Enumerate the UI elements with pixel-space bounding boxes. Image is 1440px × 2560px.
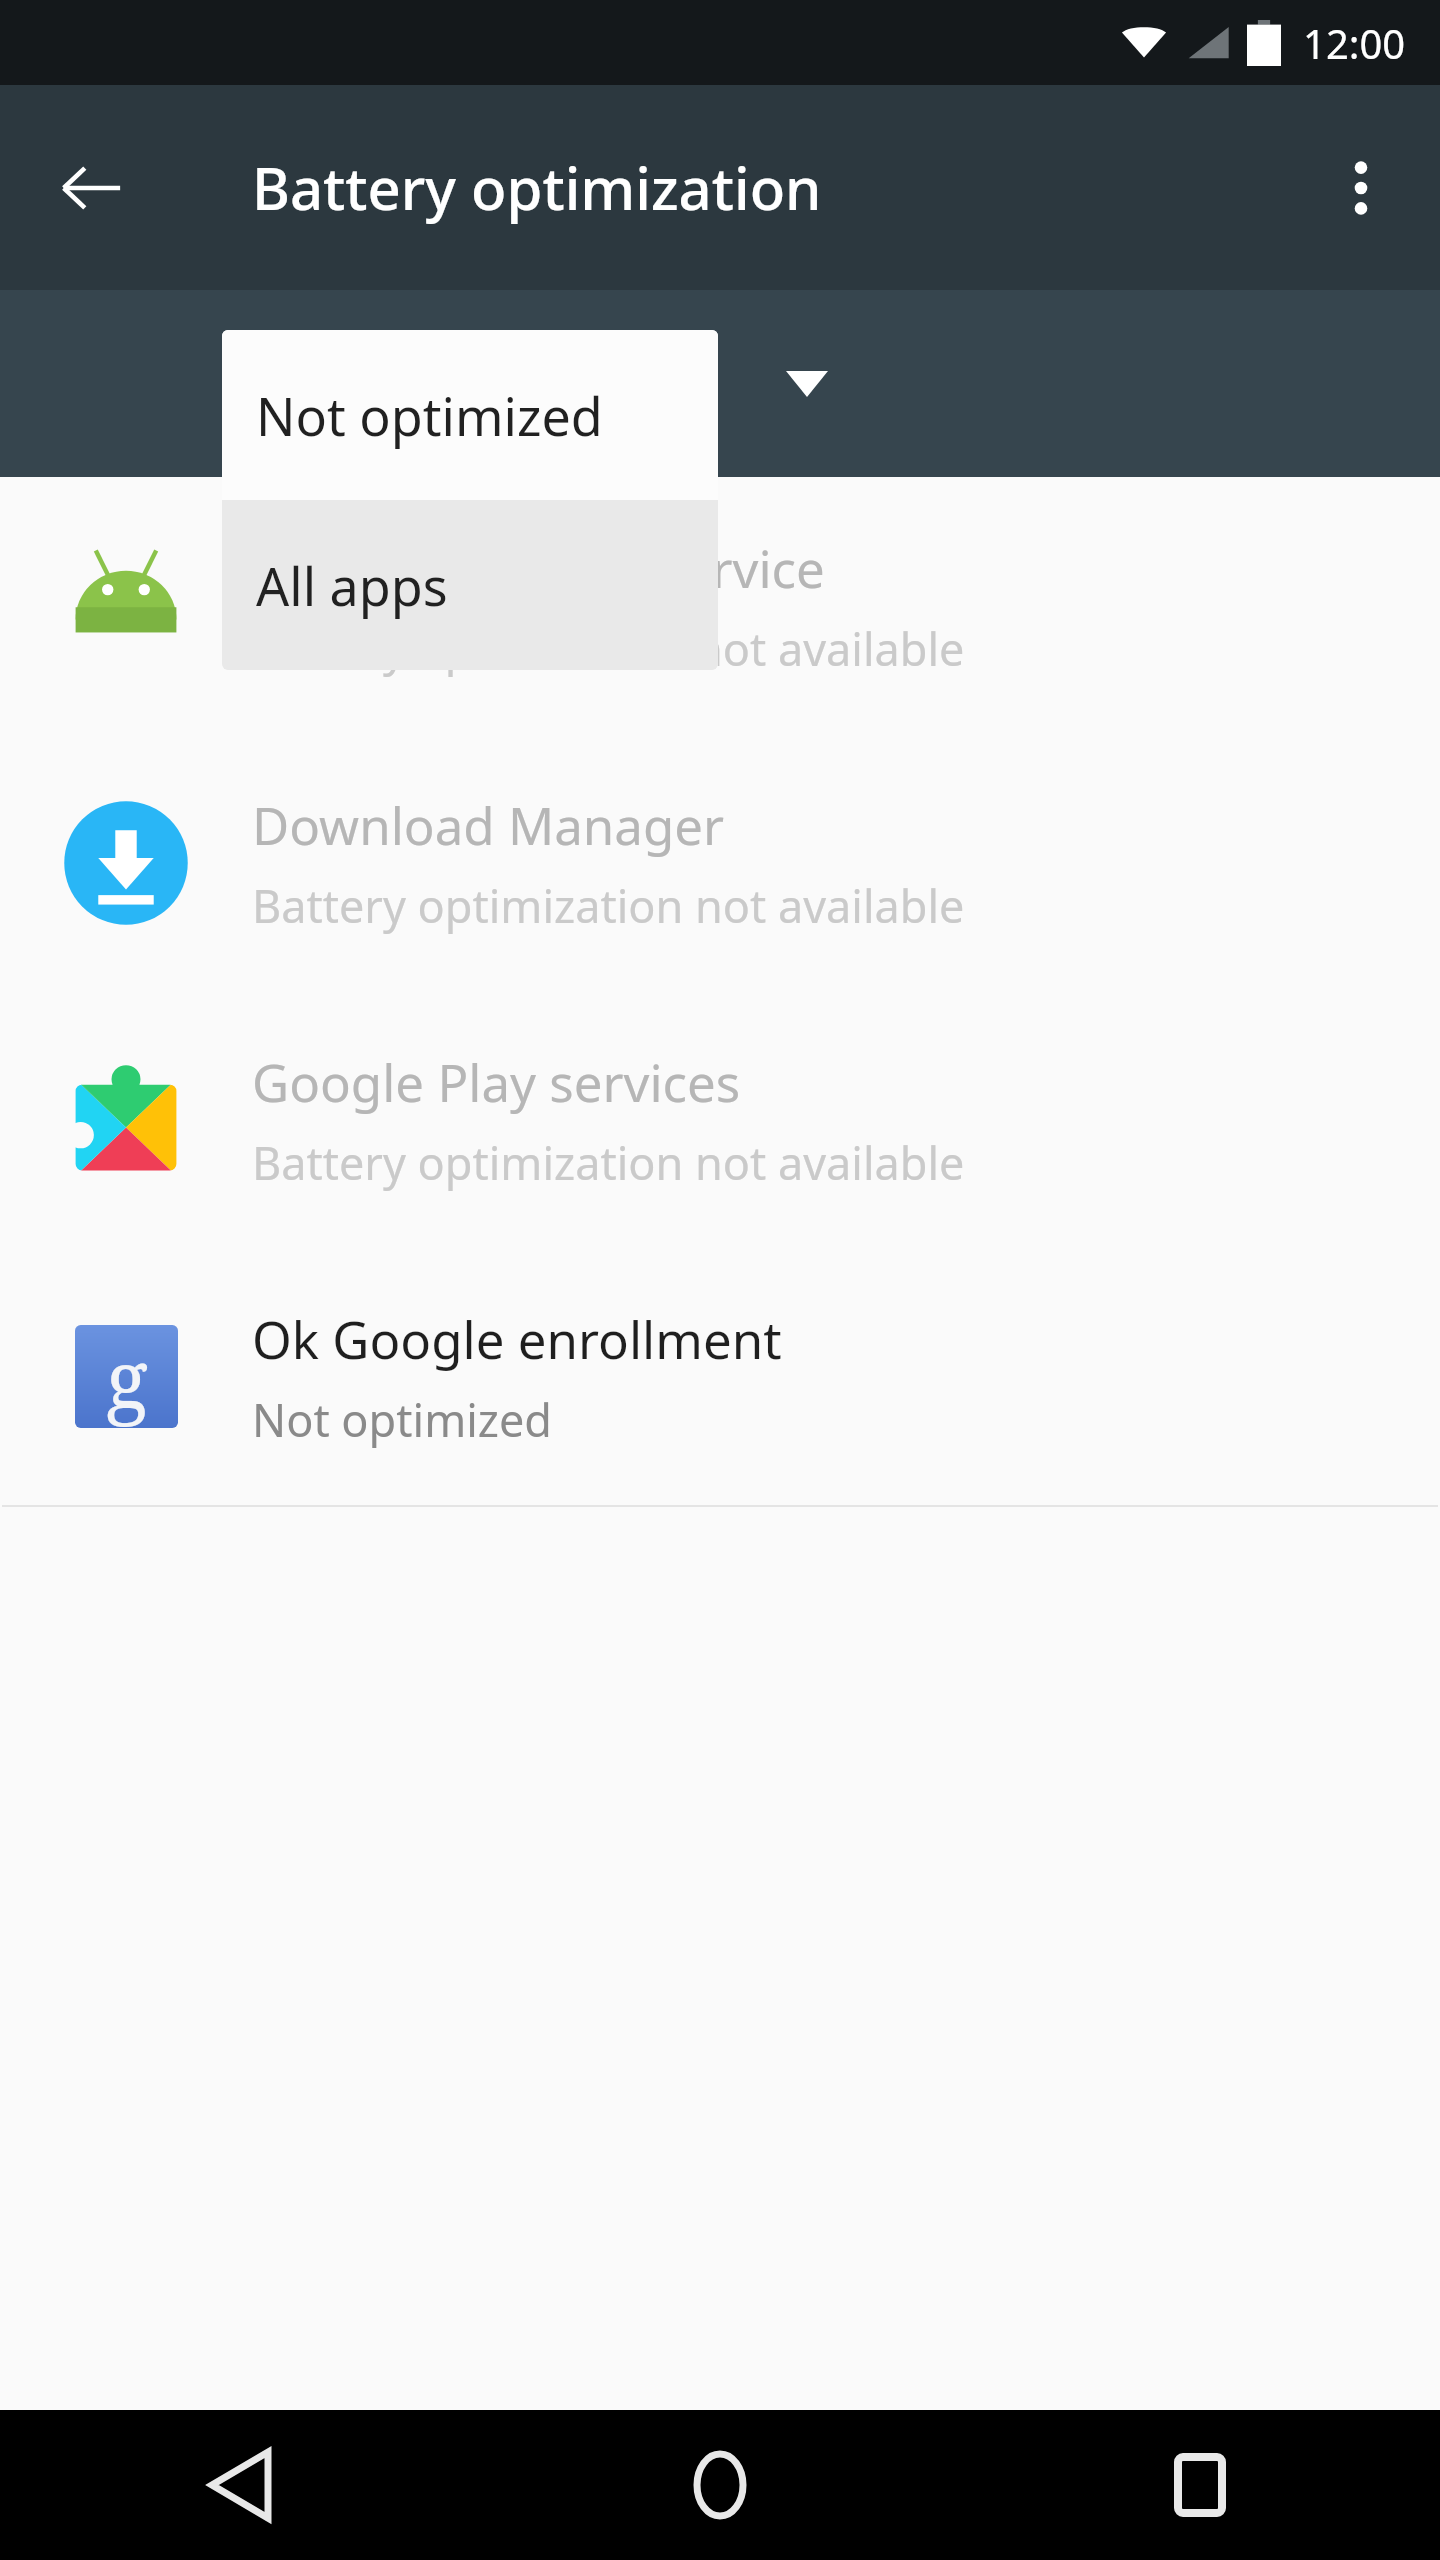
staticText: Battery optimization not available xyxy=(252,1132,965,1193)
staticText: Battery optimization not available xyxy=(252,618,965,679)
button[interactable]: Filter xyxy=(0,290,1440,477)
staticText: Not optimized xyxy=(256,380,603,451)
staticText: Battery optimization not available xyxy=(252,875,965,936)
button[interactable]: Android Sharing Service xyxy=(0,477,1440,734)
other: Filter xyxy=(785,369,829,399)
button[interactable]: Recent apps xyxy=(960,2410,1440,2560)
staticText: All apps xyxy=(256,550,448,621)
staticText: Ok Google enrollment xyxy=(252,1304,782,1373)
button[interactable]: More options xyxy=(1306,133,1416,243)
button[interactable]: g xyxy=(0,1248,1440,1505)
staticText: Download Manager xyxy=(252,790,725,859)
staticText: 12:00 xyxy=(1303,16,1406,70)
staticText: Not optimized xyxy=(252,1389,553,1450)
button[interactable]: Not optimized xyxy=(222,330,718,500)
button[interactable]: Home xyxy=(480,2410,960,2560)
button[interactable]: Back xyxy=(0,2410,480,2560)
staticText: g xyxy=(106,1325,148,1428)
staticText: Google Play services xyxy=(252,1047,741,1116)
staticText: Battery optimization xyxy=(252,148,822,227)
staticText: Android Sharing Service xyxy=(252,533,825,602)
button[interactable]: Google Play services xyxy=(0,991,1440,1248)
button[interactable]: All apps xyxy=(222,500,718,670)
button[interactable]: Back xyxy=(36,133,146,243)
button[interactable]: Download Manager xyxy=(0,734,1440,991)
